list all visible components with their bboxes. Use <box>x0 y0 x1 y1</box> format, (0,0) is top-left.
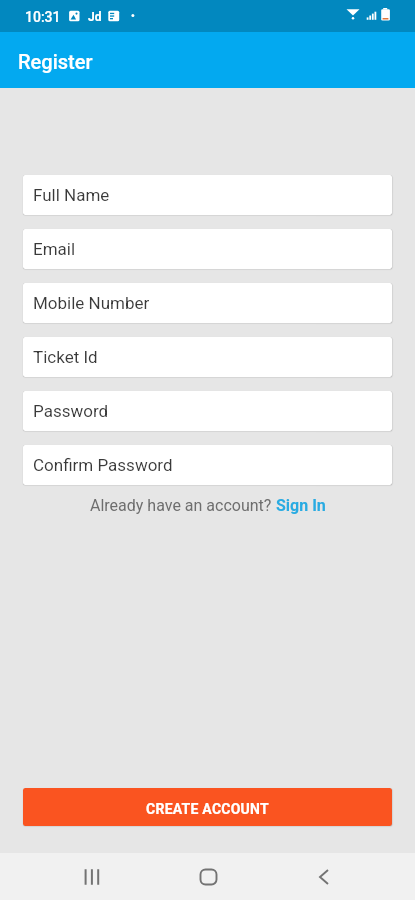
staticText: Full Name <box>33 185 110 205</box>
button[interactable]: Home <box>178 853 238 900</box>
button[interactable]: Full Name <box>23 175 392 215</box>
button[interactable]: CREATE ACCOUNT <box>23 788 392 826</box>
button[interactable]: Sign In <box>276 496 326 515</box>
button[interactable]: Password <box>23 391 392 431</box>
staticText: Register <box>18 50 93 73</box>
staticText: Already have an account? <box>90 496 276 515</box>
button[interactable]: Confirm Password <box>23 445 392 485</box>
staticText: Mobile Number <box>33 293 150 313</box>
staticText: Ticket Id <box>33 347 98 367</box>
staticText: Email <box>33 239 76 259</box>
staticText: Password <box>33 401 109 421</box>
staticText: Jd <box>88 10 102 24</box>
staticText: Sign In <box>276 496 326 515</box>
staticText: CREATE ACCOUNT <box>146 801 269 817</box>
staticText: 10:31 <box>25 9 61 25</box>
button[interactable]: Recent apps <box>62 853 122 900</box>
button[interactable]: Email <box>23 229 392 269</box>
button[interactable]: Mobile Number <box>23 283 392 323</box>
button[interactable]: Back <box>294 853 354 900</box>
staticText: Confirm Password <box>33 455 173 475</box>
button[interactable]: Ticket Id <box>23 337 392 377</box>
